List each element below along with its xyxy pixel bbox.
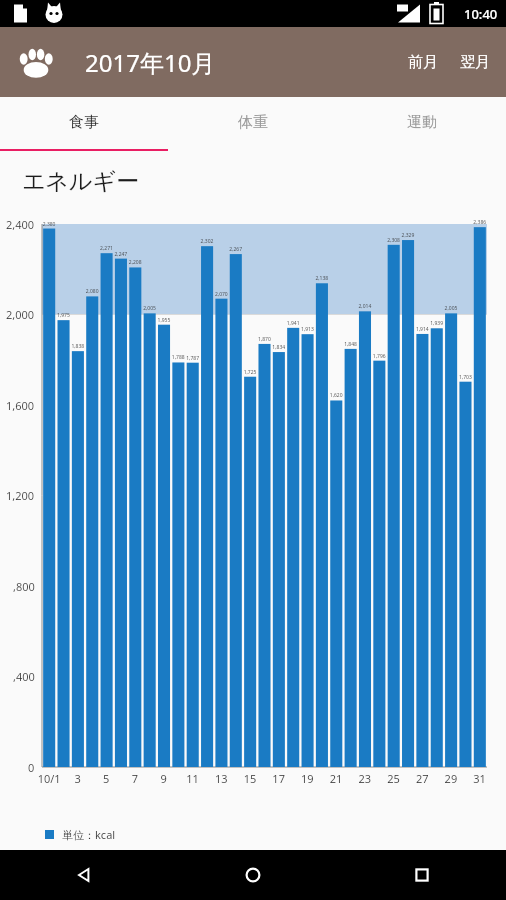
staticText: 単位：kcal xyxy=(62,827,116,842)
button[interactable]: Home xyxy=(168,850,337,900)
button[interactable]: 前月 xyxy=(396,43,450,82)
staticText: 前月 xyxy=(408,53,438,72)
staticText: エネルギー xyxy=(22,167,140,196)
button[interactable]: 体重 xyxy=(168,97,337,157)
button[interactable]: Back xyxy=(0,850,168,900)
button[interactable]: 運動 xyxy=(337,97,506,157)
staticText: 食事 xyxy=(69,113,99,132)
staticText: 翌月 xyxy=(460,53,490,72)
staticText: 体重 xyxy=(238,113,268,132)
button[interactable]: App icon xyxy=(14,40,58,84)
button[interactable]: 翌月 xyxy=(450,43,506,82)
staticText: 10:40 xyxy=(464,5,498,23)
button[interactable]: 食事 xyxy=(0,97,168,157)
staticText: 運動 xyxy=(407,113,437,132)
button[interactable]: Recents xyxy=(337,850,506,900)
staticText: 2017年10月 xyxy=(85,46,216,79)
